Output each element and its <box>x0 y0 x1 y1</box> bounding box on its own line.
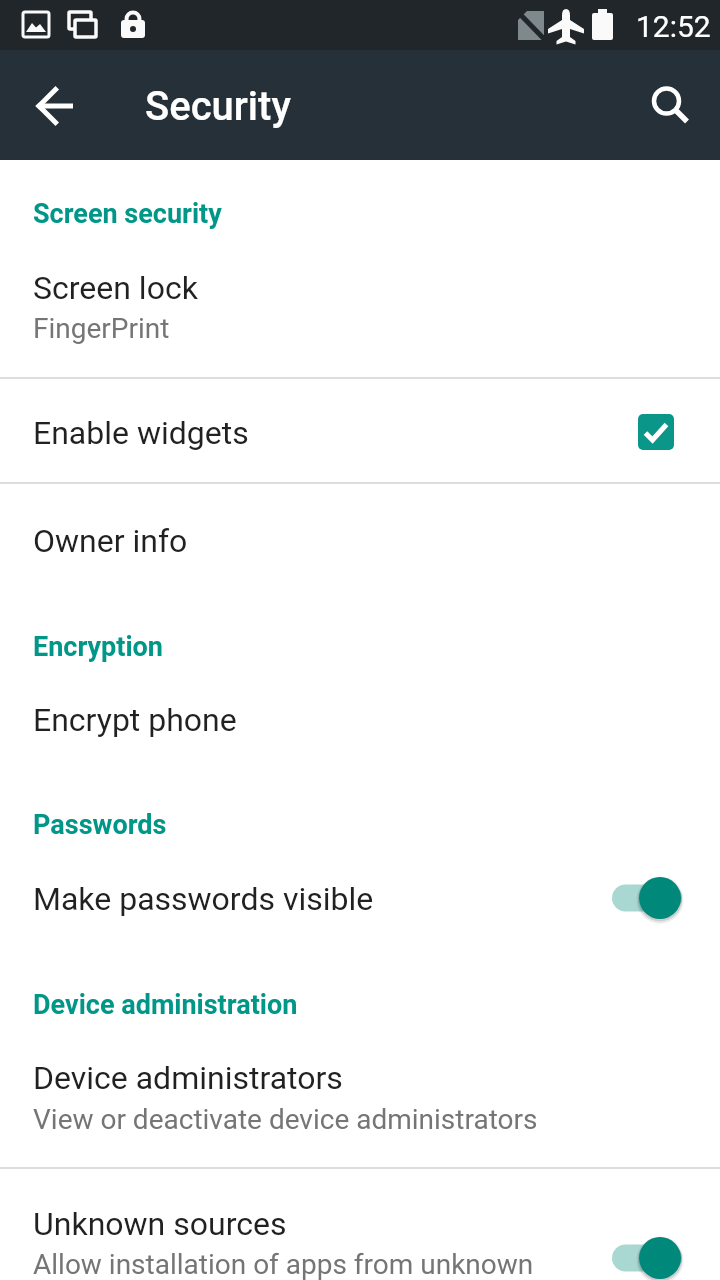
button[interactable] <box>638 71 698 131</box>
staticText: Screen lock <box>33 269 198 307</box>
staticText: Encryption <box>33 631 163 663</box>
staticText: Make passwords visible <box>33 880 374 918</box>
staticText: Screen security <box>33 198 222 230</box>
staticText: FingerPrint <box>33 312 170 345</box>
staticText: Allow installation of apps from unknown <box>33 1248 534 1280</box>
staticText: Encrypt phone <box>33 701 237 739</box>
staticText: Passwords <box>33 809 167 841</box>
button[interactable] <box>23 72 91 140</box>
staticText: View or deactivate device administrators <box>33 1103 538 1136</box>
button[interactable]: Encrypt phone <box>0 670 720 770</box>
button[interactable]: Enable widgets <box>0 379 720 482</box>
staticText: Unknown sources <box>33 1205 287 1243</box>
button[interactable]: Owner info <box>0 484 720 600</box>
button[interactable]: Device administrators <box>0 1028 720 1167</box>
staticText: Owner info <box>33 522 188 560</box>
button[interactable]: Screen lock <box>0 250 720 377</box>
button[interactable]: Make passwords visible <box>0 849 720 949</box>
staticText: Device administrators <box>33 1059 343 1097</box>
staticText: 12:52 <box>636 9 711 44</box>
staticText: Device administration <box>33 989 298 1021</box>
staticText: Enable widgets <box>33 414 249 452</box>
button[interactable]: Unknown sources <box>0 1168 720 1280</box>
staticText: Security <box>145 83 291 130</box>
